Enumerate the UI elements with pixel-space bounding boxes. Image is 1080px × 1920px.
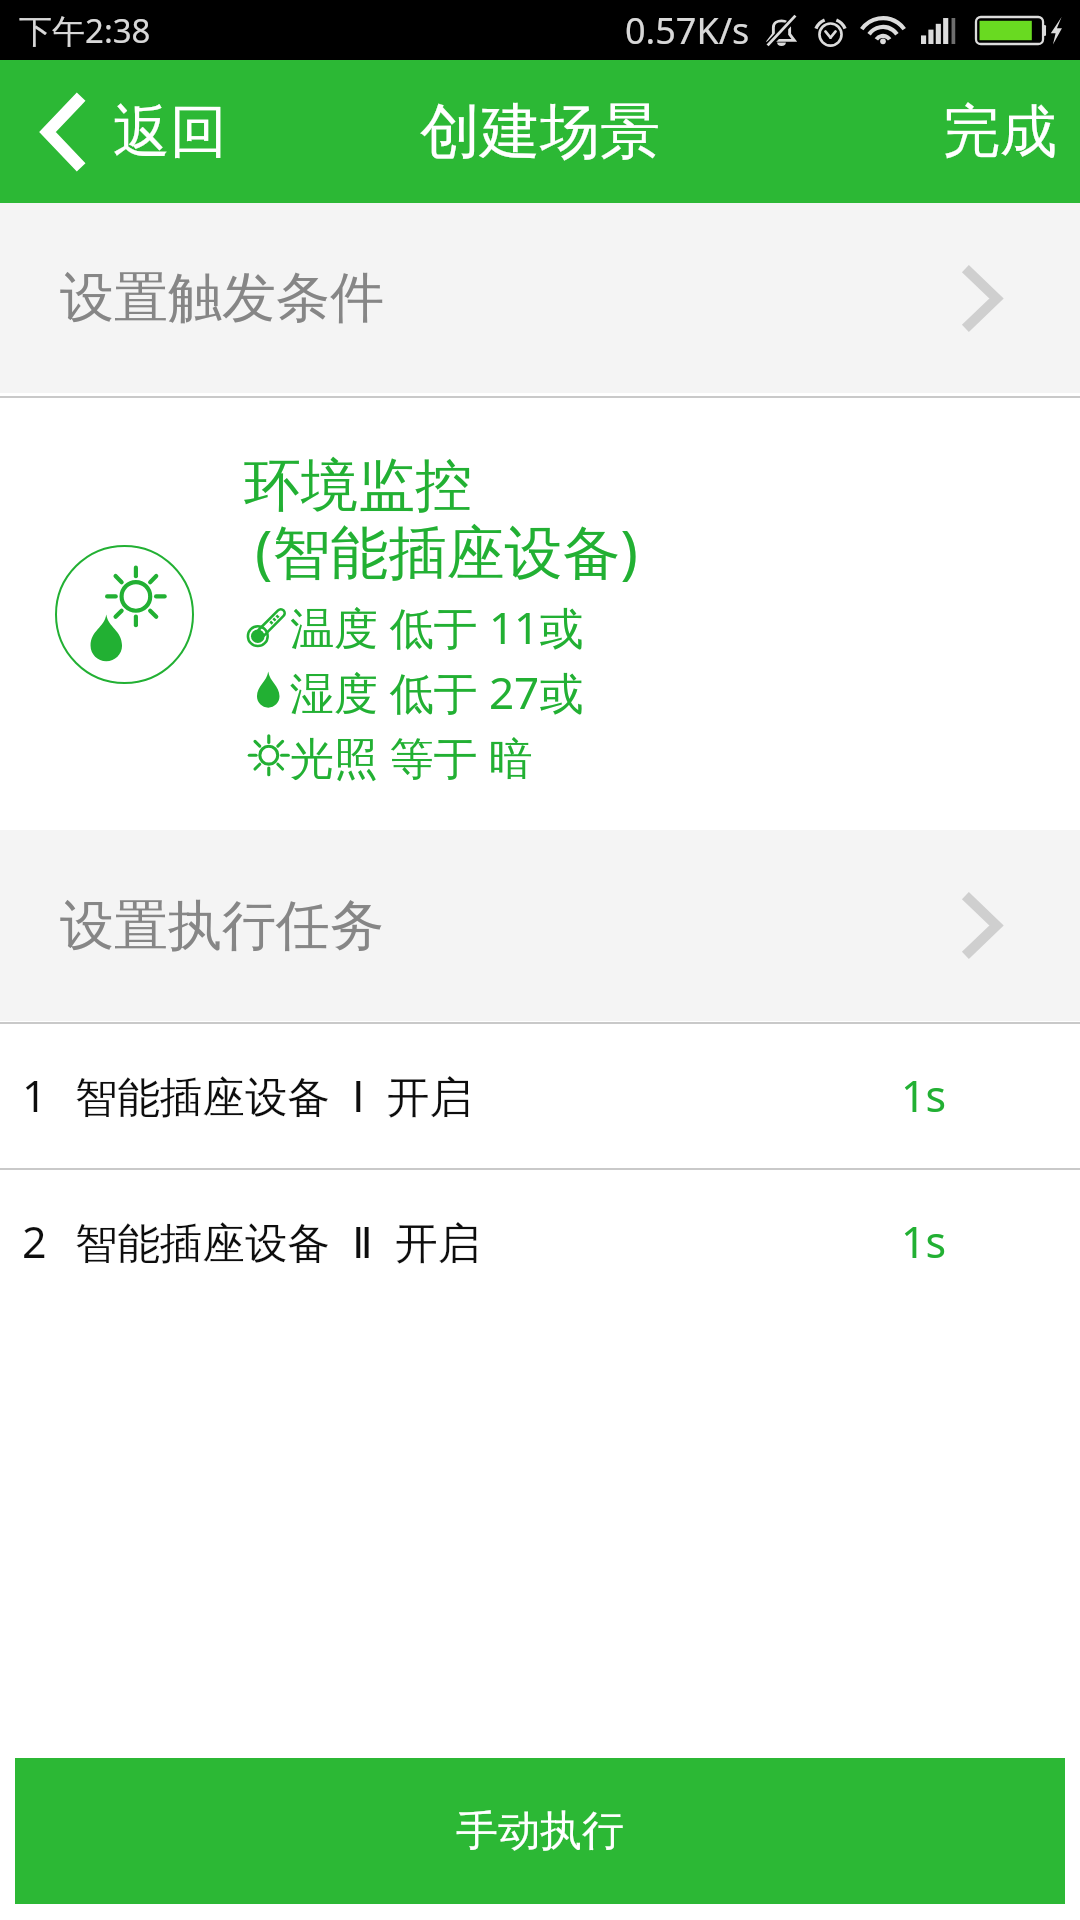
- other: Alarm: [815, 15, 846, 47]
- button[interactable]: 返回: [0, 83, 251, 181]
- button[interactable]: Environment monitor: [0, 398, 1080, 830]
- staticText: 下午2:38: [19, 8, 151, 53]
- button[interactable]: 设置触发条件: [0, 203, 1080, 393]
- other: Battery charging: [976, 17, 1066, 44]
- staticText: 温度 低于 11或: [290, 597, 584, 657]
- staticText: 0.57K/s: [625, 6, 750, 55]
- staticText: 设置执行任务: [60, 892, 384, 960]
- button[interactable]: 2: [0, 1170, 1080, 1316]
- staticText: 手动执行: [456, 1805, 624, 1858]
- other: Environment monitor: [55, 545, 194, 684]
- staticText: 创建场景: [420, 94, 660, 170]
- staticText: 智能插座设备 Ⅰ 开启: [75, 1067, 472, 1125]
- button[interactable]: 设置执行任务: [0, 830, 1080, 1021]
- staticText: 智能插座设备 Ⅱ 开启: [75, 1213, 481, 1271]
- staticText: 光照 等于 暗: [290, 727, 533, 787]
- button[interactable]: 1: [0, 1024, 1080, 1170]
- staticText: 2: [22, 1212, 47, 1271]
- other: Notifications muted: [767, 15, 796, 46]
- button[interactable]: 手动执行: [15, 1758, 1065, 1904]
- staticText: 返回: [113, 96, 227, 168]
- button[interactable]: 完成: [917, 84, 1080, 180]
- staticText: (智能插座设备): [255, 511, 638, 590]
- staticText: 环境监控: [244, 450, 472, 522]
- staticText: 1s: [901, 1066, 947, 1125]
- staticText: 1: [22, 1066, 47, 1125]
- staticText: 设置触发条件: [60, 264, 384, 332]
- staticText: 湿度 低于 27或: [290, 662, 584, 722]
- staticText: 1s: [901, 1212, 947, 1271]
- other: Wi-Fi: [863, 17, 903, 44]
- other: Mobile signal: [921, 18, 962, 44]
